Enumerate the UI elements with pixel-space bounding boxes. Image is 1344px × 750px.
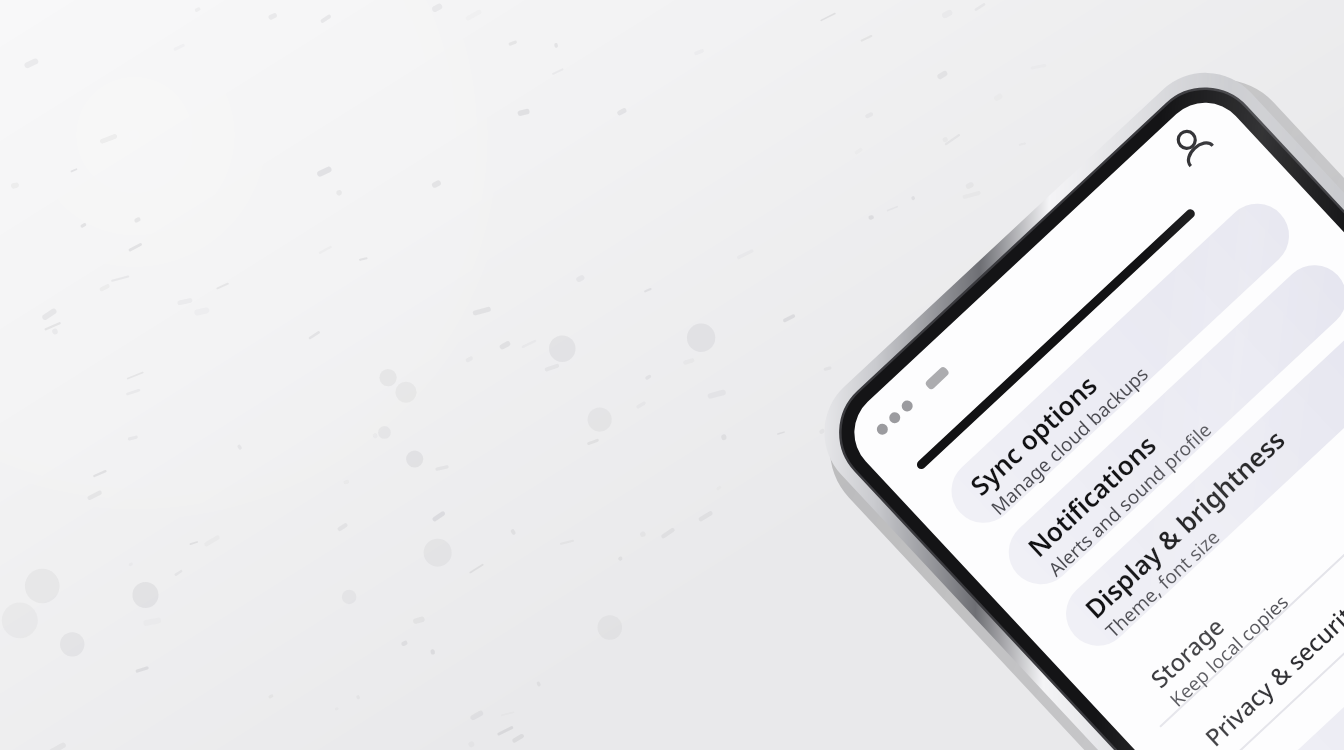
button[interactable]: Phone showing settings list bbox=[0, 0, 1344, 750]
